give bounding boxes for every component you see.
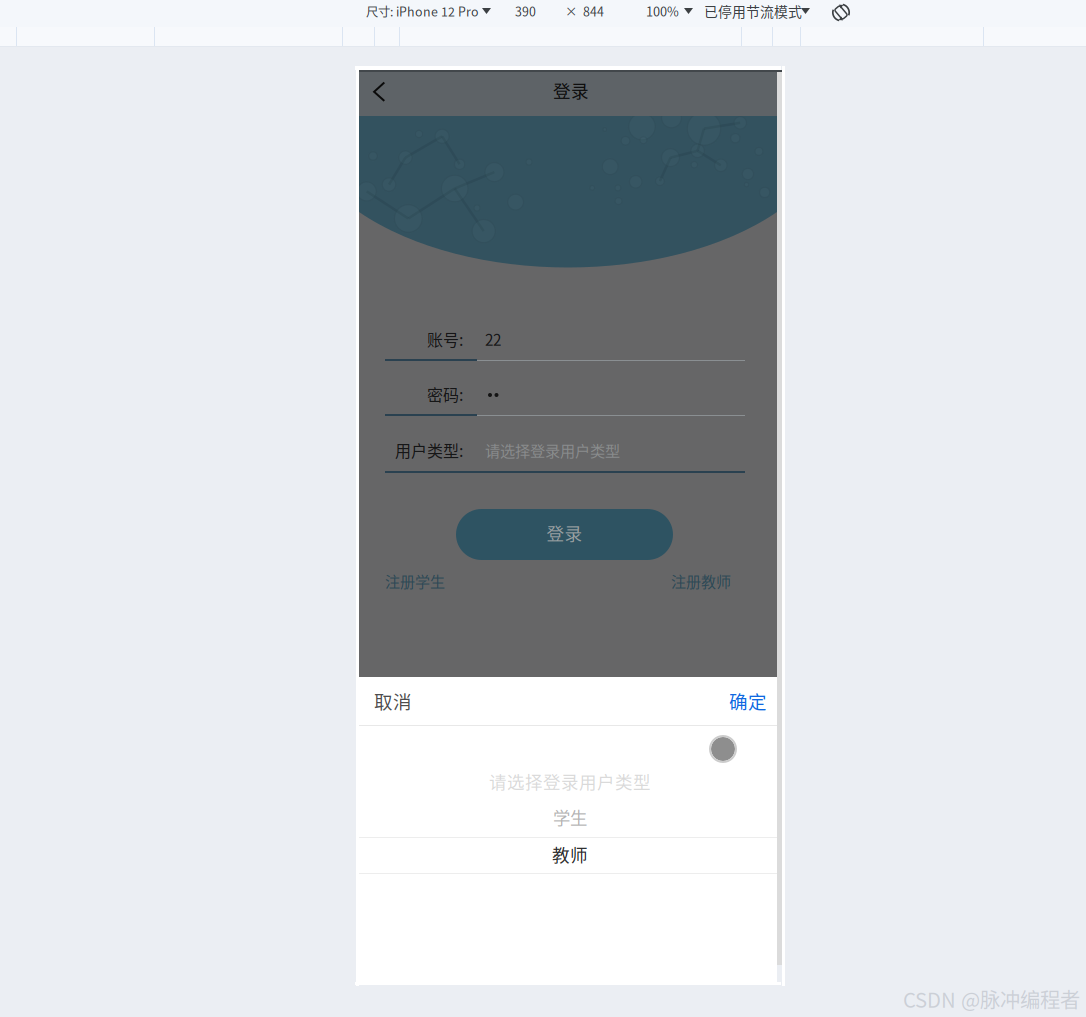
button[interactable]: 注册教师 (641, 570, 731, 592)
button[interactable]: Rotate device (831, 2, 851, 23)
button[interactable]: Back (365, 68, 405, 116)
staticText: 学生 (553, 804, 587, 830)
staticText: 密码: (427, 382, 463, 406)
staticText: 教师 (552, 841, 588, 867)
staticText: 账号: (427, 327, 463, 351)
staticText: 22 (485, 328, 501, 350)
staticText: 确定 (729, 688, 767, 714)
staticText: × (565, 2, 577, 20)
staticText: 登录 (553, 77, 589, 103)
staticText: 100% (646, 2, 679, 20)
button[interactable]: 登录 (456, 509, 673, 560)
staticText: 取消 (374, 688, 412, 714)
staticText: 尺寸: iPhone 12 Pro (366, 2, 479, 20)
staticText: 请选择登录用户类型 (489, 768, 651, 794)
staticText: 390 (515, 2, 536, 20)
staticText: 注册学生 (385, 570, 445, 592)
staticText: CSDN @脉冲编程者 (903, 984, 1080, 1014)
button[interactable]: 确定 (707, 677, 767, 725)
staticText: 用户类型: (395, 438, 463, 462)
button[interactable]: 注册学生 (385, 570, 475, 592)
staticText: 请选择登录用户类型 (485, 439, 620, 461)
staticText: 登录 (546, 520, 582, 545)
staticText: 注册教师 (671, 570, 731, 592)
staticText: 844 (583, 2, 604, 20)
button[interactable]: 取消 (359, 677, 434, 725)
staticText: 已停用节流模式 (704, 1, 802, 21)
